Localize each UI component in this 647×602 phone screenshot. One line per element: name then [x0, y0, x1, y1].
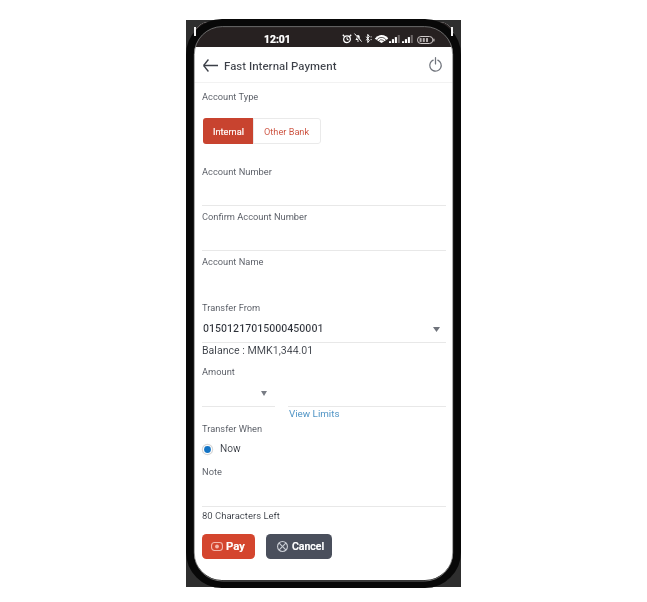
staticText: Fast Internal Payment: [224, 59, 337, 72]
staticText: Account Type: [202, 91, 259, 102]
staticText: Amount: [202, 366, 235, 377]
staticText: 01501217015000450001: [203, 322, 324, 334]
button[interactable]: Back: [198, 54, 222, 77]
staticText: Now: [220, 443, 241, 455]
staticText: 12:01: [264, 33, 291, 45]
staticText: View Limits: [289, 408, 340, 419]
button[interactable]: Pay: [202, 534, 255, 559]
button[interactable]: Other Bank: [253, 118, 321, 144]
button[interactable]: Internal: [203, 118, 253, 144]
staticText: Transfer When: [202, 423, 263, 434]
staticText: Transfer From: [202, 302, 261, 313]
button[interactable]: Logout: [425, 53, 446, 74]
staticText: Account Number: [202, 166, 272, 177]
staticText: 80 Characters Left: [202, 510, 280, 521]
button[interactable]: Cancel: [266, 534, 332, 559]
staticText: Account Name: [202, 256, 264, 267]
button[interactable]: Now: [202, 443, 241, 455]
staticText: Cancel: [292, 540, 325, 552]
staticText: Confirm Account Number: [202, 211, 308, 222]
staticText: Other Bank: [264, 126, 310, 137]
staticText: Pay: [226, 540, 245, 553]
button[interactable]: View Limits: [289, 406, 340, 417]
staticText: Internal: [213, 126, 244, 137]
staticText: Note: [202, 466, 222, 477]
staticText: Balance : MMK1,344.01: [202, 344, 314, 356]
